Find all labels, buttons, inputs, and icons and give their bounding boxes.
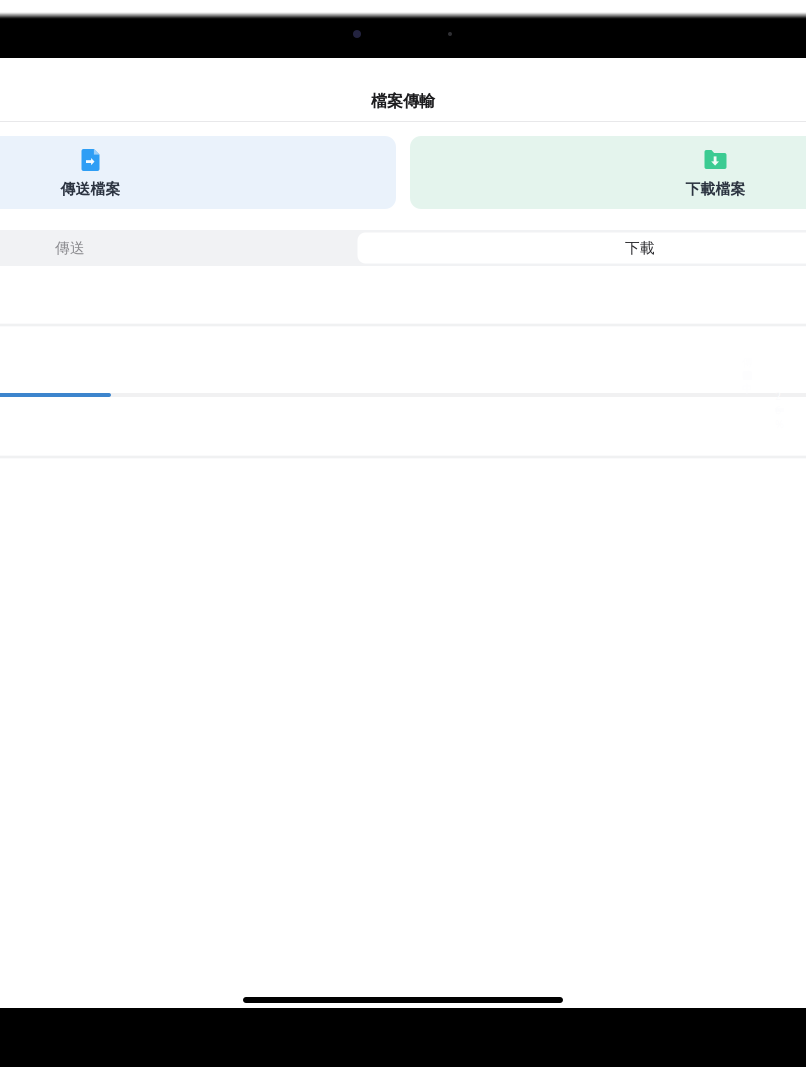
button[interactable]: 下載檔案 (410, 136, 806, 209)
button[interactable]: IMG_4821.HEIC (0, 327, 806, 455)
staticText: 檔案傳輸 (371, 91, 435, 111)
staticText: 26% (775, 389, 784, 431)
button[interactable]: 傳送 (0, 230, 355, 266)
staticText: 傳送檔案 (60, 180, 120, 198)
button[interactable]: 傳送檔案 (0, 136, 396, 209)
button[interactable]: 下載 (355, 230, 806, 266)
staticText: 下載檔案 (685, 180, 745, 198)
staticText: 傳送 (55, 239, 85, 257)
staticText: 下載 (625, 239, 655, 257)
